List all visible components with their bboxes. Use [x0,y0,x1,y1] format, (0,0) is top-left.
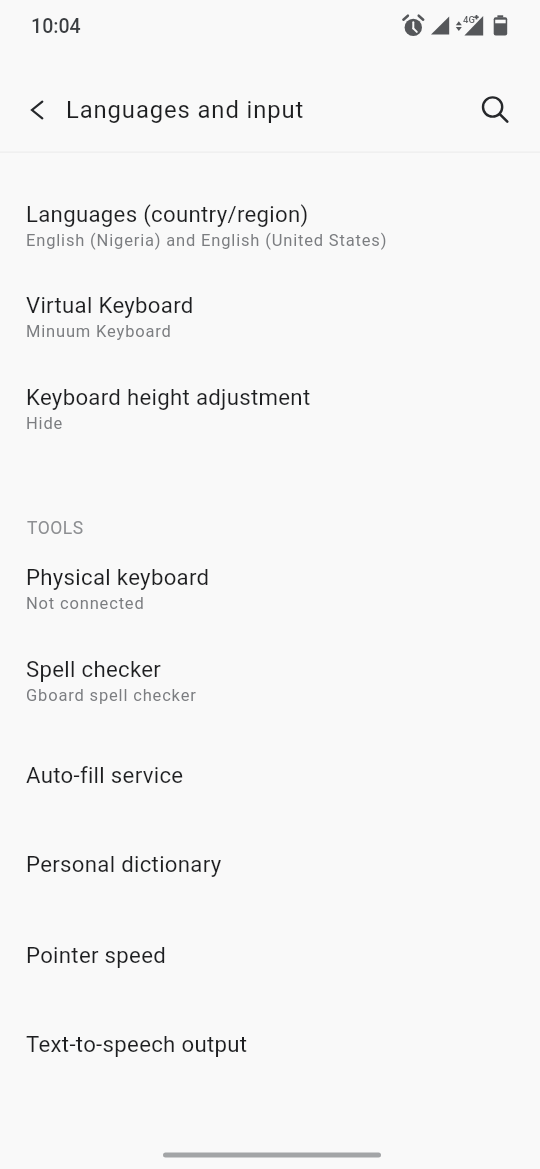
staticText: Minuum Keyboard [26,322,172,341]
button[interactable]: Physical keyboard [0,519,540,611]
button[interactable]: Languages (country/region) [0,155,540,247]
staticText: Physical keyboard [26,564,210,590]
staticText: Hide [26,414,64,433]
button[interactable]: Virtual Keyboard [0,247,540,339]
button[interactable]: Keyboard height adjustment [0,339,540,431]
button[interactable]: Spell checker [0,611,540,703]
staticText: Spell checker [26,656,162,682]
staticText: 4G [463,14,475,25]
button[interactable] [14,90,58,130]
button[interactable]: Text-to-speech output [0,994,540,1084]
staticText: Virtual Keyboard [26,292,194,318]
button[interactable]: Pointer speed [0,904,540,994]
staticText: Text-to-speech output [26,1031,248,1057]
staticText: 10:04 [31,15,81,38]
staticText: English (Nigeria) and English (United St… [26,231,388,250]
button[interactable]: Personal dictionary [0,814,540,904]
staticText: Pointer speed [26,942,167,968]
staticText: Languages and input [66,96,305,124]
staticText: TOOLS [27,518,84,539]
button[interactable] [472,87,516,127]
staticText: Languages (country/region) [26,201,309,227]
staticText: Not connected [26,594,145,613]
staticText: Personal dictionary [26,851,222,877]
staticText: Gboard spell checker [26,686,197,705]
staticText: Keyboard height adjustment [26,384,311,410]
staticText: Auto-fill service [26,762,184,788]
button[interactable]: Auto-fill service [0,724,540,814]
